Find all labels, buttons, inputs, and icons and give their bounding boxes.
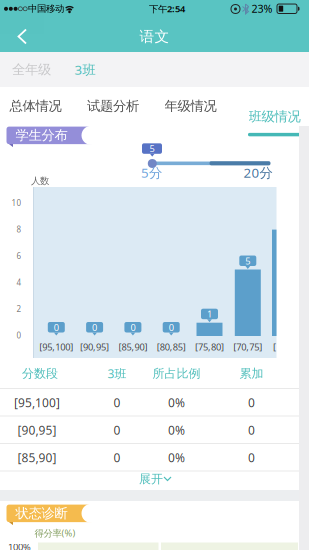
staticText: 分数段 [22,366,58,381]
staticText: 20分 [243,164,272,181]
staticText: 5分 [141,164,162,181]
staticText: 班级情况 [248,108,300,125]
button[interactable]: Slider [148,159,157,168]
staticText: 状态诊断 [15,505,67,522]
staticText: 0 [169,321,174,333]
staticText: 中国移动 [28,3,64,14]
staticText: 3班 [74,61,95,78]
staticText: [95,100] [14,394,60,410]
staticText: 0 [248,394,255,410]
staticText: [90,95] [17,422,56,438]
staticText: 年级情况 [164,98,216,114]
staticText: 0 [130,321,135,333]
staticText: 学生分布 [15,127,67,144]
button[interactable]: Back [0,0,44,34]
staticText: 0 [248,449,255,465]
staticText: 0 [113,449,120,465]
staticText: [80,85] [157,341,186,353]
staticText: 0% [168,422,185,438]
staticText: 0 [248,422,255,438]
staticText: 1 [207,308,212,320]
button[interactable]: 试题分析 [0,0,70,18]
staticText: 0 [113,422,120,438]
staticText: [70,75] [233,341,262,353]
staticText: 0 [113,394,120,410]
staticText: 下午2:54 [149,2,185,15]
staticText: [85,90] [118,341,147,353]
staticText: [85,90] [17,449,56,465]
staticText: 23% [251,2,272,16]
staticText: 0 [54,321,59,333]
button[interactable]: 3班 [0,0,40,18]
staticText: 0% [168,449,185,465]
staticText: 4 [16,277,21,288]
staticText: 3班 [107,365,126,381]
staticText: 2 [16,304,21,314]
staticText: 所占比例 [152,366,200,381]
staticText: 0% [168,394,185,410]
staticText: 得分率(%) [34,527,75,539]
staticText: 试题分析 [87,98,139,114]
staticText: 6 [16,251,21,261]
button[interactable]: 展开 [90,470,270,489]
staticText: 10 [11,198,21,208]
staticText: 5 [245,255,250,267]
staticText: 100% [8,541,31,550]
staticText: [95,100] [39,341,73,353]
staticText: 展开 [139,472,163,486]
staticText: 累加 [239,366,263,381]
button[interactable]: 全年级 [0,0,56,18]
staticText: 8 [16,224,21,235]
staticText: [75,80] [195,341,224,353]
staticText: 总体情况 [9,98,61,114]
staticText: [ [273,341,276,353]
staticText: 0 [92,321,97,333]
staticText: 5 [149,142,154,155]
button[interactable]: 班级情况 [232,87,309,126]
staticText: 0 [16,330,21,341]
staticText: 全年级 [12,61,51,78]
button[interactable]: 年级情况 [0,0,70,18]
staticText: [90,95] [80,341,109,353]
staticText: 人数 [31,175,49,187]
staticText: 语文 [139,27,169,45]
button[interactable]: 总体情况 [0,0,70,18]
